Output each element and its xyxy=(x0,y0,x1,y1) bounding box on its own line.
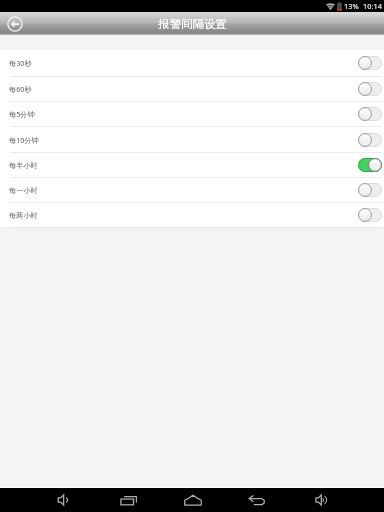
button[interactable]: Volume down xyxy=(32,488,95,512)
button[interactable]: Disabled xyxy=(358,133,382,147)
button[interactable]: 每半小时 xyxy=(0,153,384,177)
button[interactable]: 每一小时 xyxy=(0,178,384,202)
staticText: 每两小时 xyxy=(9,211,38,220)
button[interactable]: 每60秒 xyxy=(0,77,384,101)
button[interactable]: Back xyxy=(7,16,23,32)
button[interactable]: 每两小时 xyxy=(0,203,384,227)
button[interactable]: Disabled xyxy=(358,56,382,70)
button[interactable]: Disabled xyxy=(358,208,382,222)
staticText: 每5分钟 xyxy=(9,109,35,119)
button[interactable]: 每10分钟 xyxy=(0,127,384,152)
button[interactable]: 每30秒 xyxy=(0,50,384,76)
button[interactable]: Disabled xyxy=(358,183,382,197)
staticText: 每30秒 xyxy=(9,58,32,68)
button[interactable]: Home xyxy=(161,488,224,512)
button[interactable]: Volume up xyxy=(289,488,354,512)
staticText: 每10分钟 xyxy=(9,135,39,145)
button[interactable]: Disabled xyxy=(358,82,382,96)
staticText: 每60秒 xyxy=(9,84,32,94)
staticText: 10:14 xyxy=(363,1,382,11)
button[interactable]: Enabled xyxy=(358,158,382,172)
staticText: 每一小时 xyxy=(9,186,38,195)
button[interactable]: Disabled xyxy=(358,107,382,121)
button[interactable]: 每5分钟 xyxy=(0,102,384,126)
button[interactable]: Back xyxy=(225,488,289,512)
staticText: 每半小时 xyxy=(9,161,38,170)
staticText: 报警间隔设置 xyxy=(158,17,227,31)
staticText: 13% xyxy=(344,1,359,11)
button[interactable]: Recent apps xyxy=(96,488,161,512)
